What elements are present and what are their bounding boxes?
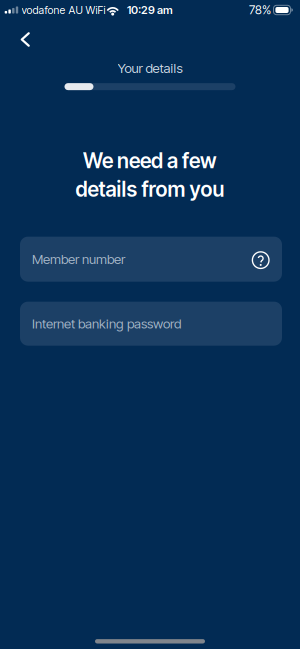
- staticText: Internet banking password: [32, 316, 181, 332]
- staticText: 78%: [249, 3, 271, 17]
- button[interactable]: Internet banking password: [20, 302, 282, 346]
- button[interactable]: Member number: [20, 237, 282, 282]
- staticText: details from you: [75, 177, 224, 202]
- staticText: 10:29 am: [127, 3, 173, 17]
- staticText: Your details: [117, 60, 182, 76]
- staticText: vodafone AU WiFi: [22, 3, 106, 16]
- staticText: We need a few: [83, 148, 217, 173]
- button[interactable]: Back: [0, 25, 44, 54]
- staticText: Member number: [32, 251, 125, 267]
